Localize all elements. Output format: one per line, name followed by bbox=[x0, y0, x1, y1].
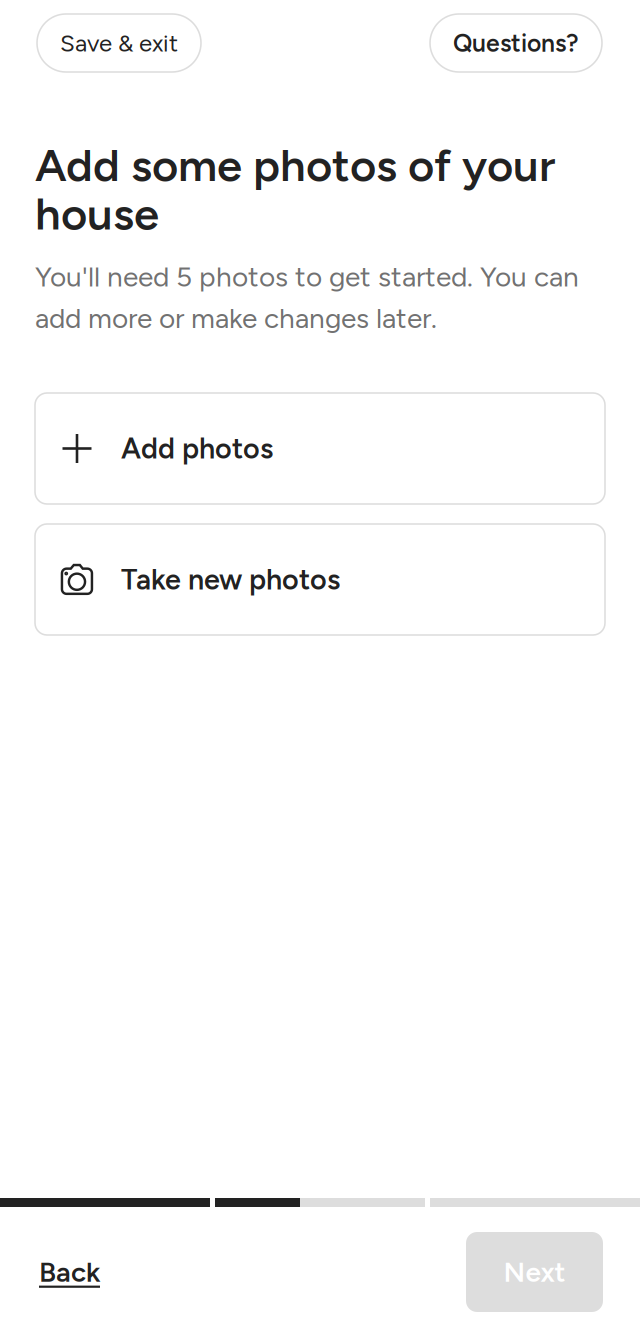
button[interactable]: Save & exit bbox=[37, 14, 201, 72]
button[interactable]: Next bbox=[466, 1232, 603, 1312]
staticText: Take new photos bbox=[121, 562, 340, 597]
staticText: Add photos bbox=[121, 431, 273, 466]
staticText: Back bbox=[39, 1255, 100, 1289]
button[interactable]: Take new photos bbox=[35, 524, 605, 635]
staticText: Save & exit bbox=[60, 29, 178, 57]
staticText: Add some photos of your house bbox=[35, 138, 555, 241]
button[interactable]: Add photos bbox=[35, 393, 605, 504]
staticText: Next bbox=[503, 1255, 565, 1289]
staticText: You'll need 5 photos to get started. You… bbox=[35, 260, 579, 335]
staticText: Questions? bbox=[453, 28, 579, 58]
button[interactable]: Questions? bbox=[430, 14, 602, 72]
button[interactable]: Back bbox=[37, 1245, 102, 1299]
